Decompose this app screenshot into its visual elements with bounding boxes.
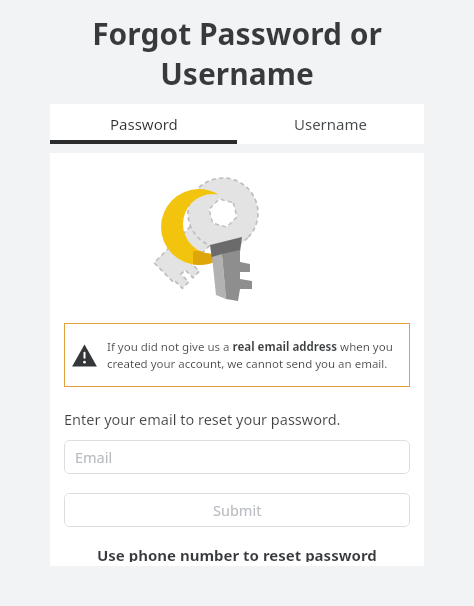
- staticText: Password: [110, 114, 178, 134]
- other: Warning: [71, 342, 98, 369]
- button[interactable]: Username: [237, 104, 424, 144]
- staticText: Submit: [213, 500, 262, 520]
- staticText: Username: [294, 114, 367, 134]
- button[interactable]: Password: [50, 104, 237, 144]
- button[interactable]: Submit: [64, 493, 410, 527]
- staticText: Use phone number to reset password: [97, 545, 377, 562]
- other: Key illustration: [151, 169, 323, 305]
- staticText: Enter your email to reset your password.: [64, 409, 341, 429]
- button[interactable]: Use phone number to reset password: [50, 541, 424, 566]
- staticText: Forgot Password or Username: [37, 13, 437, 94]
- staticText: If you did not give us a real email addr…: [107, 339, 400, 371]
- staticText: Email: [75, 447, 113, 467]
- button[interactable]: Email: [64, 440, 410, 474]
